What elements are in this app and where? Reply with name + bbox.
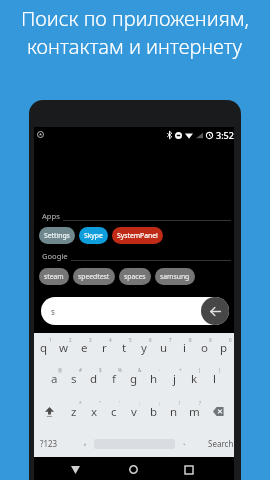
button[interactable]: # [64, 363, 84, 394]
button[interactable]: 7 [154, 333, 174, 363]
button[interactable]: SystemPanel [112, 227, 163, 244]
button[interactable]: spaces [119, 268, 151, 285]
staticText: * [79, 400, 82, 406]
button[interactable]: ' [104, 394, 124, 424]
button[interactable]: ? [184, 394, 204, 424]
button[interactable]: Backspace [204, 394, 234, 424]
staticText: spaces [124, 272, 146, 281]
button[interactable]: 6 [134, 333, 154, 363]
button[interactable]: 0 [214, 333, 234, 363]
button[interactable]: Recents [177, 458, 200, 480]
button[interactable]: ?123 [34, 424, 76, 457]
staticText: o [201, 340, 208, 356]
staticText: # [79, 367, 82, 373]
button[interactable]: . [175, 424, 193, 457]
staticText: b [150, 404, 158, 420]
staticText: steam [44, 272, 64, 281]
button[interactable]: 4 [94, 333, 114, 363]
staticText: z [71, 404, 77, 420]
button[interactable]: 9 [194, 333, 214, 363]
staticText: q [40, 340, 48, 356]
staticText: Search [208, 438, 234, 449]
staticText: 5 [129, 337, 132, 343]
staticText: ( [199, 367, 201, 373]
staticText: l [213, 371, 216, 387]
button[interactable]: ( [184, 363, 204, 394]
staticText: p [220, 340, 228, 356]
staticText: . [183, 436, 186, 448]
staticText: ' [119, 400, 121, 406]
staticText: $ [99, 367, 102, 373]
staticText: 3:52 [216, 129, 234, 141]
button[interactable]: $ [84, 363, 104, 394]
button[interactable]: Back [201, 297, 229, 325]
staticText: 7 [169, 337, 172, 343]
staticText: 4 [109, 337, 112, 343]
staticText: f [112, 371, 116, 387]
button[interactable]: & [124, 363, 144, 394]
staticText: n [170, 404, 178, 420]
staticText: Settings [44, 231, 70, 240]
button[interactable]: , [76, 424, 94, 457]
button[interactable]: Home [122, 458, 145, 480]
button[interactable]: * [64, 394, 84, 424]
staticText: speedtest [78, 272, 110, 281]
staticText: 3 [89, 337, 92, 343]
button[interactable]: Search [193, 424, 234, 457]
button[interactable]: Skype [79, 227, 108, 244]
button[interactable]: 8 [174, 333, 194, 363]
staticText: d [90, 371, 98, 387]
staticText: g [130, 371, 138, 387]
button[interactable]: samsung [155, 268, 195, 285]
staticText: v [131, 404, 137, 420]
staticText: контактам и интернету [27, 33, 243, 60]
staticText: , [84, 436, 87, 448]
staticText: - [159, 367, 161, 373]
button[interactable]: ! [164, 394, 184, 424]
staticText: ; [159, 400, 161, 406]
staticText: Skype [84, 231, 103, 240]
button[interactable]: steam [39, 268, 69, 285]
button[interactable]: 2 [54, 333, 74, 363]
staticText: k [191, 371, 198, 387]
staticText: h [150, 371, 158, 387]
button[interactable]: Back [64, 458, 87, 480]
staticText: Google [42, 251, 68, 261]
button[interactable]: " [84, 394, 104, 424]
staticText: m [189, 404, 200, 420]
button[interactable]: - [144, 363, 164, 394]
button[interactable]: : [124, 394, 144, 424]
staticText: ! [179, 400, 181, 406]
button[interactable]: @ [44, 363, 64, 394]
button[interactable]: ) [204, 363, 224, 394]
staticText: i [183, 340, 186, 356]
staticText: ? [199, 400, 201, 406]
staticText: samsung [160, 272, 190, 281]
staticText: 6 [149, 337, 152, 343]
button[interactable]: Settings [39, 227, 75, 244]
staticText: ?123 [40, 438, 58, 449]
staticText: 8 [189, 337, 192, 343]
button[interactable]: s [41, 297, 229, 325]
staticText: & [138, 367, 142, 373]
button[interactable]: Shift [34, 394, 64, 424]
button[interactable]: % [104, 363, 124, 394]
staticText: s [71, 371, 77, 387]
staticText: x [91, 404, 98, 420]
button[interactable]: ; [144, 394, 164, 424]
staticText: SystemPanel [117, 231, 158, 240]
button[interactable]: 5 [114, 333, 134, 363]
button[interactable]: + [164, 363, 184, 394]
staticText: c [111, 404, 117, 420]
staticText: ) [219, 367, 221, 373]
button[interactable]: 3 [74, 333, 94, 363]
button[interactable]: speedtest [73, 268, 115, 285]
staticText: 0 [229, 337, 232, 343]
staticText: + [179, 367, 182, 373]
staticText: t [122, 340, 127, 356]
staticText: : [139, 400, 141, 406]
staticText: a [51, 371, 58, 387]
button[interactable]: 1 [34, 333, 54, 363]
staticText: Apps [42, 211, 60, 221]
